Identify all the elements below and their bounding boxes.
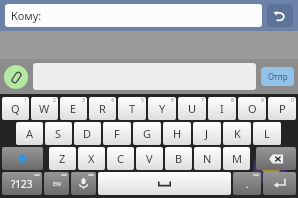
staticText: EN	[53, 180, 61, 188]
staticText: E	[70, 101, 77, 116]
staticText: K	[234, 126, 241, 141]
staticText: Кому:	[11, 8, 42, 23]
staticText: 0	[291, 97, 294, 104]
button[interactable]: EN	[44, 172, 69, 195]
button[interactable]: Period	[233, 172, 261, 195]
button[interactable]: T	[118, 97, 146, 120]
staticText: C	[117, 151, 124, 166]
staticText: T	[129, 101, 136, 116]
button[interactable]: V	[136, 147, 163, 170]
staticText: X	[88, 151, 95, 166]
staticText: U	[188, 101, 197, 116]
button[interactable]: I	[208, 97, 236, 120]
button[interactable]: Отпр	[261, 67, 294, 86]
button[interactable]: P	[268, 97, 296, 120]
staticText: F	[114, 126, 120, 141]
staticText: 1	[24, 97, 27, 104]
staticText: A	[26, 126, 34, 141]
button[interactable]: N	[194, 147, 221, 170]
button[interactable]: F	[103, 122, 131, 145]
button[interactable]: Space	[98, 172, 231, 195]
button[interactable]: A	[16, 122, 43, 145]
staticText: N	[203, 151, 212, 166]
staticText: 5	[141, 97, 144, 104]
staticText: Q	[11, 101, 20, 116]
staticText: 2	[53, 97, 56, 104]
button[interactable]: Back	[267, 4, 293, 27]
staticText: ?123	[11, 177, 33, 191]
staticText: W	[39, 101, 50, 116]
button[interactable]: B	[165, 147, 192, 170]
button[interactable]: Attach	[4, 65, 28, 89]
button[interactable]: L	[253, 122, 281, 145]
staticText: H	[173, 126, 182, 141]
button[interactable]: Z	[49, 147, 76, 170]
button[interactable]: U	[178, 97, 206, 120]
button[interactable]: G	[133, 122, 161, 145]
staticText: V	[146, 151, 153, 166]
staticText: 3	[82, 97, 85, 104]
staticText: S	[55, 126, 62, 141]
button[interactable]: S	[45, 122, 72, 145]
button[interactable]: C	[107, 147, 134, 170]
staticText: O	[248, 101, 257, 116]
staticText: R	[99, 101, 106, 116]
staticText: M	[232, 151, 242, 166]
button[interactable]: J	[193, 122, 221, 145]
button[interactable]: Кому:	[5, 4, 262, 27]
button[interactable]: Q	[2, 97, 29, 120]
staticText: 4	[111, 97, 114, 104]
button[interactable]: E	[60, 97, 87, 120]
button[interactable]: Voice input	[71, 172, 96, 195]
staticText: J	[205, 126, 209, 141]
staticText: 8	[231, 97, 234, 104]
button[interactable]: H	[163, 122, 191, 145]
button[interactable]: D	[74, 122, 101, 145]
staticText: P	[279, 101, 286, 116]
staticText: G	[143, 126, 152, 141]
button[interactable]: ?123	[2, 172, 42, 195]
staticText: .	[246, 178, 249, 190]
staticText: B	[175, 151, 183, 166]
staticText: 9	[261, 97, 264, 104]
staticText: Отпр	[268, 71, 288, 82]
button[interactable]: Enter	[263, 172, 296, 195]
staticText: I	[220, 101, 224, 116]
button[interactable]: R	[89, 97, 116, 120]
staticText: 7	[201, 97, 204, 104]
button[interactable]: M	[223, 147, 250, 170]
button[interactable]: Shift	[2, 147, 43, 170]
staticText: Y	[159, 101, 166, 116]
button[interactable]: Y	[148, 97, 176, 120]
staticText: Z	[59, 151, 66, 166]
staticText: 6	[171, 97, 174, 104]
button[interactable]: Backspace	[256, 147, 296, 170]
button[interactable]: O	[238, 97, 266, 120]
button[interactable]: X	[78, 147, 105, 170]
staticText: D	[83, 126, 92, 141]
staticText: L	[264, 126, 270, 141]
button[interactable]: W	[31, 97, 58, 120]
button[interactable]: K	[223, 122, 251, 145]
